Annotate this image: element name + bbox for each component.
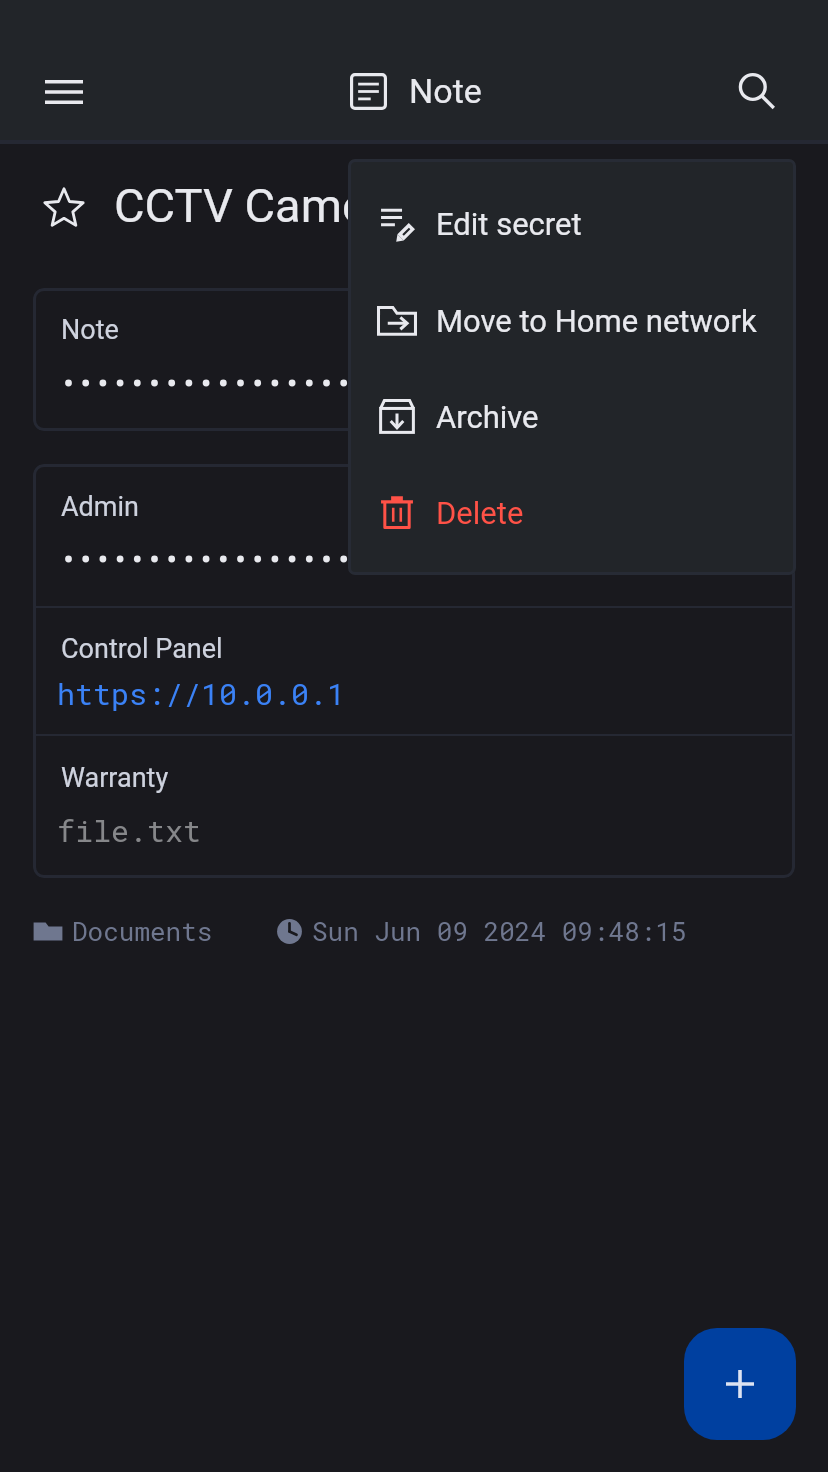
button[interactable]: Edit secret (348, 175, 796, 271)
staticText: CCTV Camera (114, 178, 408, 233)
button[interactable]: Add new entry (684, 1328, 796, 1440)
staticText: Note (61, 314, 119, 346)
staticText: file.txt (57, 811, 202, 851)
staticText: Admin (61, 491, 139, 523)
staticText: Delete (436, 495, 524, 531)
button[interactable]: Toggle favorite (28, 172, 100, 244)
button[interactable]: Admin (33, 464, 795, 878)
button[interactable]: Search (721, 56, 793, 128)
button[interactable]: Delete (348, 464, 796, 560)
staticText: Warranty (61, 762, 169, 794)
staticText: Note (409, 71, 482, 111)
staticText: Documents (72, 914, 213, 948)
staticText: Archive (436, 399, 539, 435)
button[interactable]: Open navigation menu (28, 56, 100, 128)
button[interactable]: Archive (348, 368, 796, 464)
staticText: Edit secret (436, 206, 582, 242)
staticText: Move to Home network (436, 303, 757, 339)
staticText: Control Panel (61, 633, 223, 665)
button[interactable]: Move to Home network (348, 272, 796, 368)
staticText: Sun Jun 09 2024 09:48:15 (312, 914, 687, 948)
button[interactable]: Note (33, 288, 795, 431)
staticText: https://10.0.0.1 (57, 674, 346, 714)
